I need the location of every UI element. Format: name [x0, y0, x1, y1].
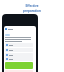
- other: App icon: [5, 28, 7, 30]
- button[interactable]: App icon: [5, 28, 13, 30]
- staticText: preparation: [23, 9, 41, 13]
- button[interactable]: [5, 43, 33, 47]
- button[interactable]: [5, 53, 33, 57]
- staticText: Effective: [25, 4, 39, 8]
- button[interactable]: [5, 34, 10, 36]
- button[interactable]: [5, 48, 33, 52]
- button[interactable]: [5, 57, 33, 61]
- button[interactable]: [5, 62, 33, 69]
